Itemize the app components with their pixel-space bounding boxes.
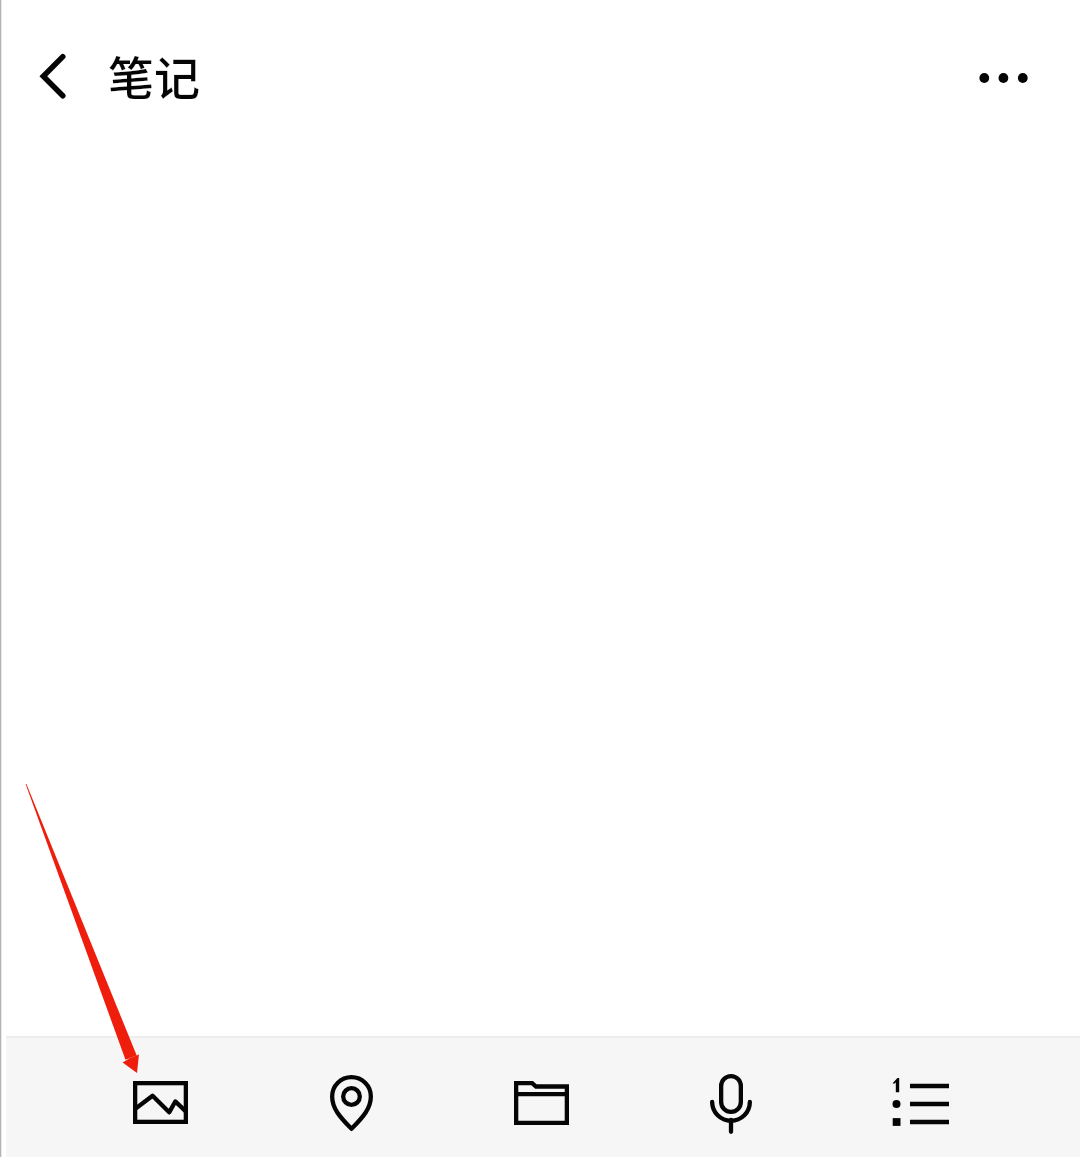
staticText: 笔记 [108,42,200,109]
button[interactable]: More options [944,33,1060,123]
button[interactable]: Insert image [80,1038,240,1157]
button[interactable]: Location [271,1038,431,1157]
button[interactable]: Voice input [651,1038,811,1157]
button[interactable]: Back [8,32,96,120]
button[interactable]: List format [840,1038,1000,1157]
button[interactable]: Folder [461,1038,621,1157]
